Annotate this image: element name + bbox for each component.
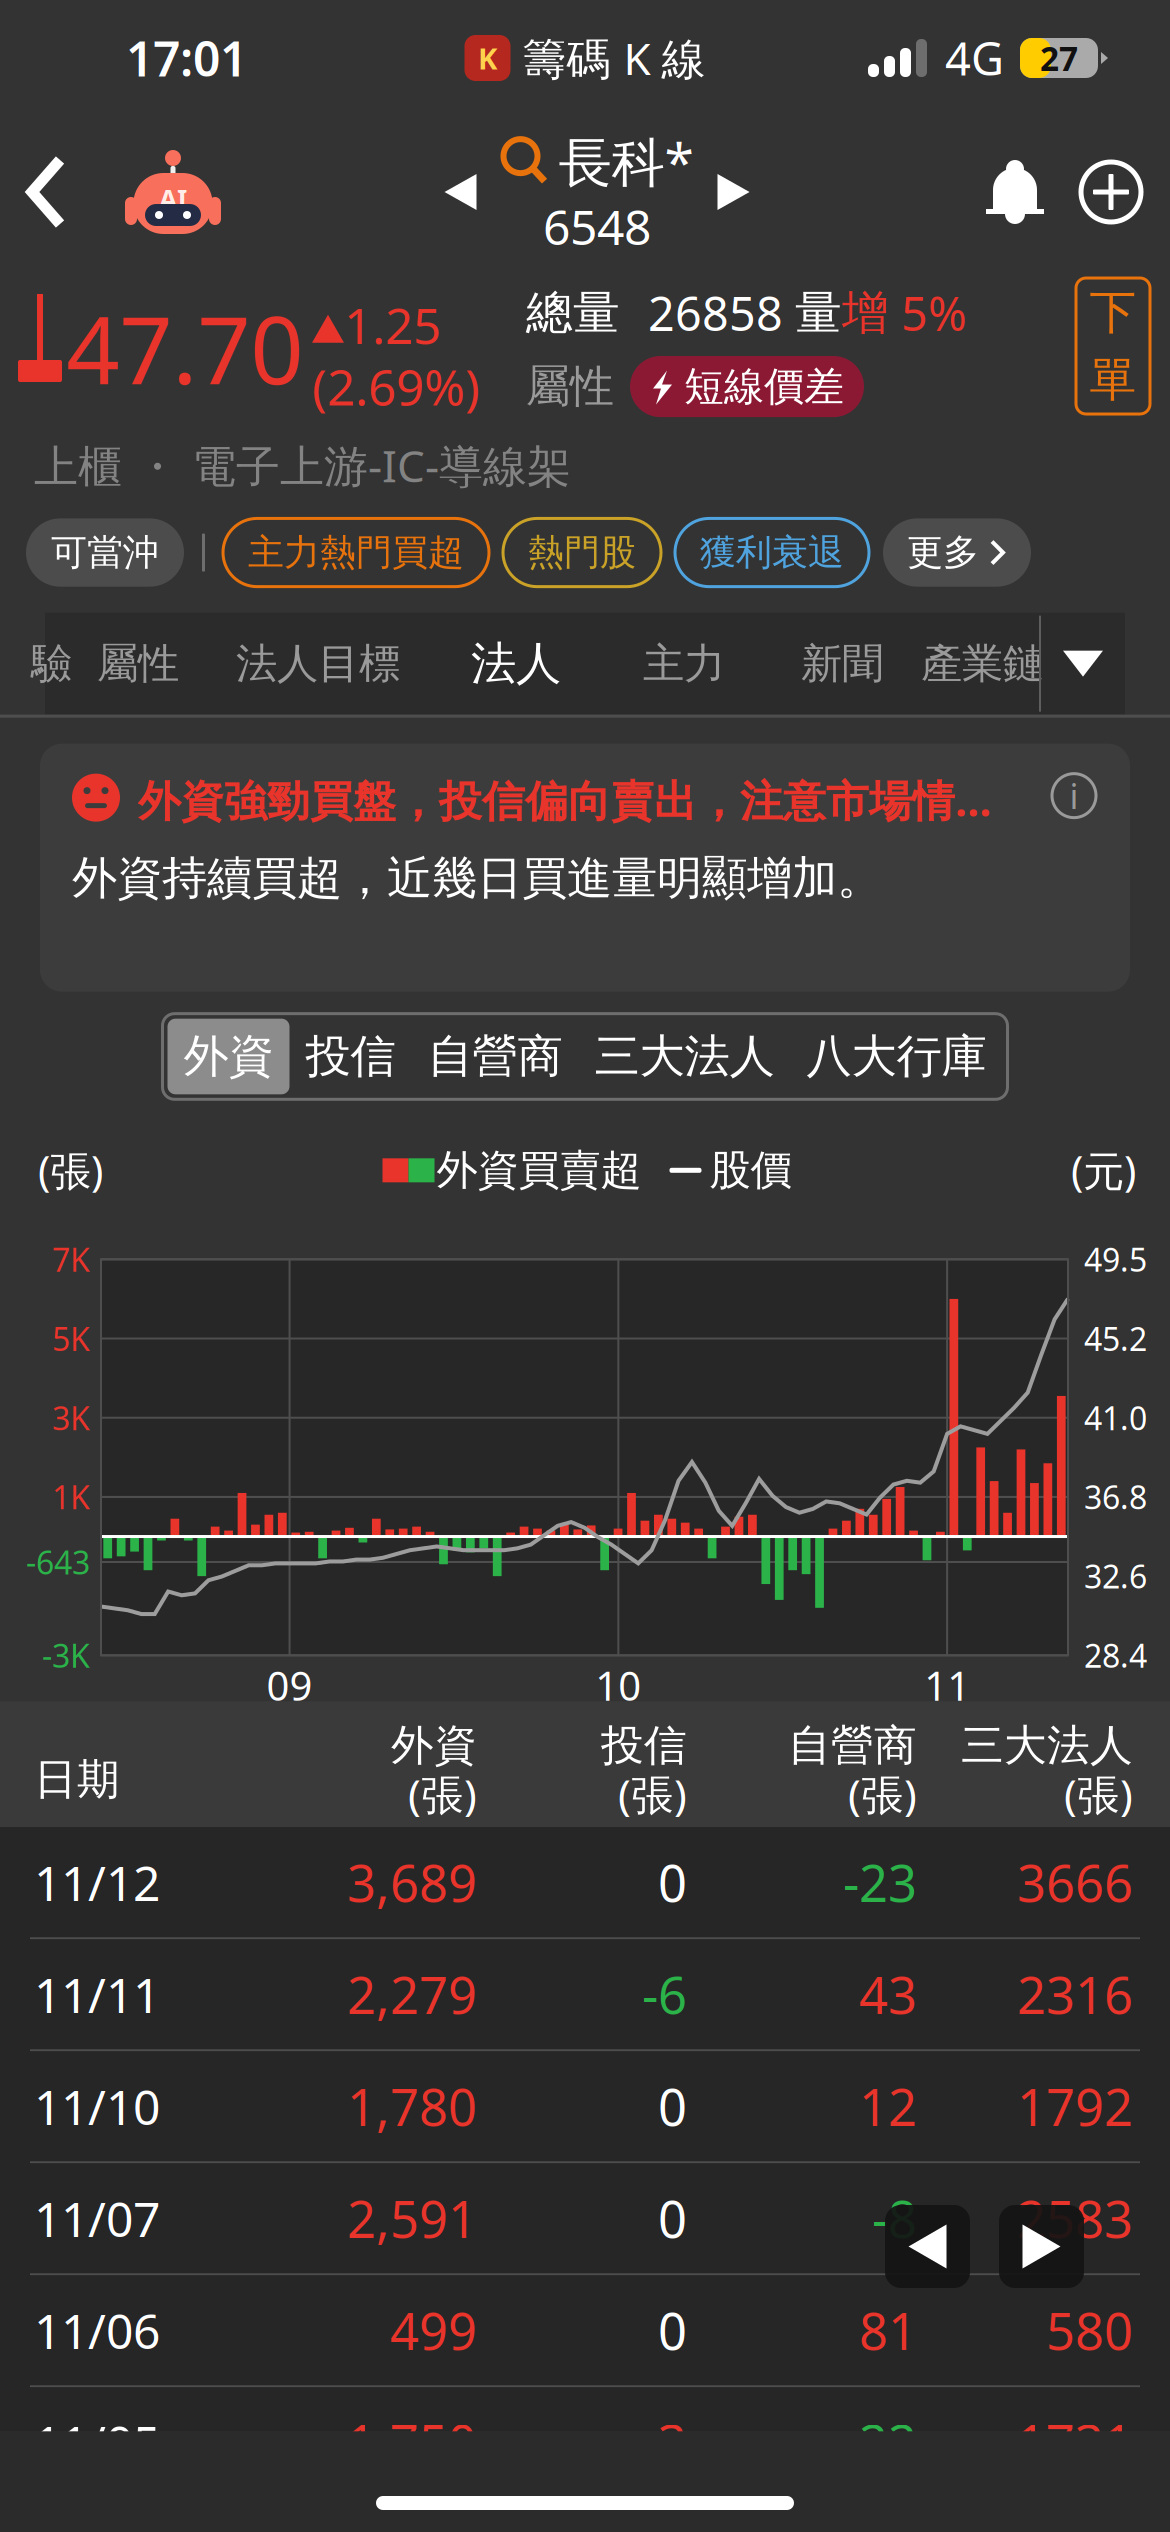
staticText: 單	[1089, 351, 1136, 408]
staticText: 41.0	[1084, 1396, 1147, 1439]
staticText: 11/11	[34, 1962, 160, 2026]
button[interactable]: Previous stock	[428, 158, 492, 226]
staticText: 籌碼 K 線	[522, 29, 705, 87]
button[interactable]: Add to watchlist	[1058, 159, 1170, 225]
staticText: 增	[842, 284, 889, 342]
staticText: 驗	[31, 638, 72, 689]
staticText: i	[1069, 773, 1078, 819]
staticText: 產業鏈	[921, 638, 1044, 689]
button[interactable]: 新聞	[763, 638, 921, 689]
staticText: 外資持續買超，近幾日買進量明顯增加。	[72, 850, 882, 906]
button[interactable]: 主力熱門買超	[223, 518, 489, 587]
staticText: 2583	[1017, 2185, 1133, 2252]
staticText: 熱門股	[528, 530, 636, 575]
staticText: 外資買賣超	[436, 1145, 641, 1196]
staticText: 八大行庫	[806, 1029, 986, 1084]
staticText: 26858	[648, 282, 795, 344]
staticText: 499	[390, 2297, 477, 2364]
staticText: 法人	[471, 636, 561, 691]
staticText: 43	[859, 1961, 917, 2028]
button[interactable]: Back	[0, 140, 88, 244]
staticText: 32.6	[1084, 1555, 1147, 1597]
staticText: 屬性	[526, 359, 614, 413]
staticText: 11	[924, 1659, 970, 1712]
staticText: 1.25	[344, 292, 441, 357]
staticText: 4G	[945, 28, 1004, 88]
button[interactable]: 下	[1076, 278, 1150, 414]
staticText: 3,689	[347, 1849, 477, 1916]
button[interactable]: Next stock	[701, 158, 765, 226]
button[interactable]: Info	[1050, 772, 1098, 820]
staticText: 1731	[1017, 2409, 1133, 2476]
staticText: -23	[843, 1849, 917, 1916]
staticText: 上櫃 ・ 電子上游-IC-導線架	[34, 436, 571, 494]
button[interactable]: 更多	[883, 518, 1031, 587]
staticText: -8	[872, 2185, 917, 2252]
button[interactable]: 長科*	[492, 126, 701, 258]
staticText: 0	[658, 1849, 687, 1916]
staticText: 1,750	[347, 2409, 477, 2476]
staticText: 下	[1089, 284, 1136, 341]
staticText: AI	[159, 181, 187, 216]
button[interactable]: 短線價差	[630, 356, 864, 417]
staticText: 0	[658, 2185, 687, 2252]
staticText: -6	[642, 1961, 687, 2028]
staticText: 3666	[1017, 1849, 1133, 1916]
staticText: 自營商	[427, 1029, 562, 1084]
staticText: 外資強勁買盤，投信偏向賣出，注意市場情…	[138, 772, 991, 828]
staticText: (張)	[618, 1766, 687, 1822]
staticText: 10	[595, 1659, 641, 1712]
staticText: 1,780	[347, 2073, 477, 2140]
staticText: 三大法人	[594, 1029, 774, 1084]
button[interactable]: 主力	[605, 638, 763, 689]
staticText: 11/12	[34, 1850, 160, 1914]
button[interactable]: AI assistant	[88, 147, 222, 237]
staticText: 投信	[601, 1719, 687, 1772]
staticText: 獲利衰退	[700, 530, 844, 575]
staticText: 股價	[709, 1145, 791, 1196]
staticText: 外資	[391, 1719, 477, 1772]
staticText: 27	[1040, 36, 1078, 80]
staticText: 81	[859, 2297, 917, 2364]
button[interactable]: Previous page	[885, 2205, 970, 2288]
button[interactable]: 產業鏈	[921, 638, 1039, 689]
button[interactable]: 法人目標	[209, 638, 427, 689]
staticText: 1792	[1017, 2073, 1133, 2140]
button[interactable]: 三大法人	[578, 1019, 790, 1094]
staticText: 0	[658, 2297, 687, 2364]
button[interactable]: 八大行庫	[790, 1019, 1002, 1094]
staticText: 短線價差	[684, 362, 844, 411]
staticText: 量	[795, 284, 842, 342]
staticText: 45.2	[1084, 1317, 1147, 1360]
button[interactable]: 可當沖	[26, 518, 184, 587]
staticText: 2316	[1017, 1961, 1133, 2028]
button[interactable]: 外資	[167, 1019, 289, 1094]
staticText: (元)	[1071, 1143, 1136, 1198]
button[interactable]: 法人	[427, 636, 605, 691]
staticText: 11/05	[34, 2410, 160, 2474]
staticText: 3	[658, 2409, 687, 2476]
staticText: 日期	[34, 1753, 120, 1806]
staticText: 長科*	[558, 126, 693, 196]
button[interactable]: 獲利衰退	[675, 518, 869, 587]
staticText: (張)	[408, 1766, 477, 1822]
button[interactable]: Alerts	[972, 160, 1058, 224]
staticText: 三大法人	[961, 1719, 1133, 1772]
staticText: (2.69%)	[312, 353, 480, 419]
staticText: K	[478, 38, 497, 77]
staticText: 5K	[52, 1317, 90, 1360]
button[interactable]: 自營商	[411, 1019, 578, 1094]
staticText: 17:01	[126, 26, 247, 90]
staticText: 主力	[643, 638, 725, 689]
button[interactable]: More tabs	[1041, 616, 1125, 712]
button[interactable]: Next page	[999, 2205, 1084, 2288]
button[interactable]: 屬性	[67, 638, 209, 689]
staticText: 新聞	[801, 638, 883, 689]
staticText: 可當沖	[51, 530, 159, 575]
staticText: -3K	[42, 1634, 90, 1677]
button[interactable]: 投信	[289, 1019, 411, 1094]
staticText: 7K	[52, 1238, 90, 1281]
staticText: 2,279	[347, 1961, 477, 2028]
staticText: 47.70	[66, 286, 303, 410]
button[interactable]: 熱門股	[503, 518, 661, 587]
